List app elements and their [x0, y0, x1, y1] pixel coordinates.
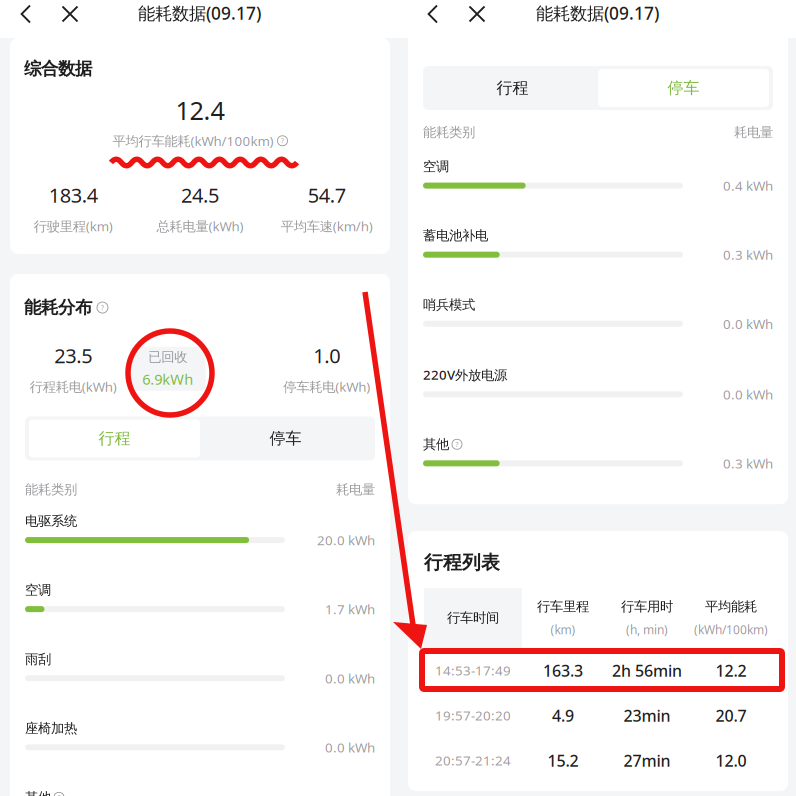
staticText: 20.7: [715, 705, 746, 726]
staticText: 1.0: [313, 342, 340, 369]
staticText: 行驶里程(km): [34, 217, 113, 235]
staticText: 行车时间: [447, 610, 499, 626]
staticText: 能耗类别: [423, 124, 475, 140]
staticText: 空调: [25, 582, 51, 598]
staticText: 行程耗电(kWh): [30, 378, 117, 395]
staticText: 12.2: [715, 660, 746, 681]
staticText: 15.2: [547, 750, 578, 771]
staticText: 0.0 kWh: [325, 669, 375, 687]
staticText: 雨刮: [25, 651, 51, 667]
button[interactable]: Close: [453, 0, 493, 33]
staticText: 0.3 kWh: [723, 454, 773, 472]
staticText: 其他: [25, 789, 51, 796]
staticText: 6.9kWh: [142, 369, 193, 389]
staticText: 行车里程: [537, 598, 589, 615]
staticText: 耗电量: [734, 124, 773, 140]
staticText: 空调: [423, 158, 449, 175]
staticText: 能耗数据(09.17): [138, 1, 261, 24]
staticText: 平均行车能耗(kWh/100km): [112, 132, 273, 150]
staticText: 行车用时: [621, 598, 673, 615]
button[interactable]: 行程: [29, 419, 200, 457]
staticText: 23.5: [54, 342, 92, 369]
staticText: 12.0: [715, 750, 746, 771]
staticText: (h, min): [626, 622, 668, 637]
staticText: 其他: [423, 436, 449, 452]
staticText: 12.4: [175, 93, 224, 127]
button[interactable]: Back: [6, 0, 46, 33]
staticText: 蓄电池补电: [423, 227, 488, 244]
staticText: 能耗分布: [24, 297, 92, 318]
staticText: 0.0 kWh: [723, 315, 773, 333]
staticText: 能耗数据(09.17): [536, 1, 659, 24]
staticText: 183.4: [49, 182, 98, 208]
staticText: 平均车速(km/h): [281, 217, 373, 235]
staticText: 行程列表: [424, 551, 500, 574]
staticText: 4.9: [552, 705, 574, 726]
staticText: ?: [57, 793, 60, 796]
staticText: 电驱系统: [25, 513, 77, 529]
staticText: ?: [455, 440, 458, 449]
staticText: 已回收: [148, 349, 187, 365]
staticText: (km): [550, 622, 575, 637]
button[interactable]: 行程: [427, 69, 598, 107]
staticText: 停车: [269, 429, 301, 448]
staticText: 163.3: [543, 660, 583, 681]
staticText: 0.0 kWh: [325, 738, 375, 756]
staticText: 0.3 kWh: [723, 246, 773, 263]
button[interactable]: 停车: [200, 419, 371, 457]
staticText: 19:57-20:20: [435, 707, 511, 724]
staticText: 20:57-21:24: [435, 752, 511, 769]
staticText: ?: [281, 136, 284, 145]
staticText: 耗电量: [336, 481, 375, 498]
staticText: 24.5: [181, 182, 219, 208]
staticText: ?: [101, 303, 104, 312]
staticText: 行程: [496, 78, 528, 98]
staticText: 行程: [98, 429, 130, 448]
staticText: 能耗类别: [25, 481, 77, 498]
staticText: 27min: [623, 750, 670, 771]
staticText: 哨兵模式: [423, 296, 475, 313]
staticText: 220V外放电源: [423, 366, 507, 383]
staticText: 1.7 kWh: [325, 600, 375, 618]
staticText: 0.4 kWh: [723, 177, 773, 194]
staticText: 平均能耗: [705, 598, 757, 615]
staticText: 23min: [623, 705, 670, 726]
staticText: 20.0 kWh: [317, 531, 375, 549]
button[interactable]: 停车: [598, 69, 769, 107]
button[interactable]: Close: [46, 0, 86, 33]
staticText: 座椅加热: [25, 720, 77, 736]
staticText: 2h 56min: [612, 660, 682, 681]
staticText: 总耗电量(kWh): [156, 217, 243, 235]
staticText: 54.7: [308, 182, 346, 208]
button[interactable]: Back: [413, 0, 453, 33]
staticText: 0.0 kWh: [723, 385, 773, 403]
staticText: (kWh/100km): [694, 622, 768, 637]
staticText: 停车: [667, 78, 699, 98]
staticText: 停车耗电(kWh): [283, 378, 370, 395]
staticText: 综合数据: [24, 58, 92, 79]
staticText: 14:53-17:49: [435, 662, 511, 679]
